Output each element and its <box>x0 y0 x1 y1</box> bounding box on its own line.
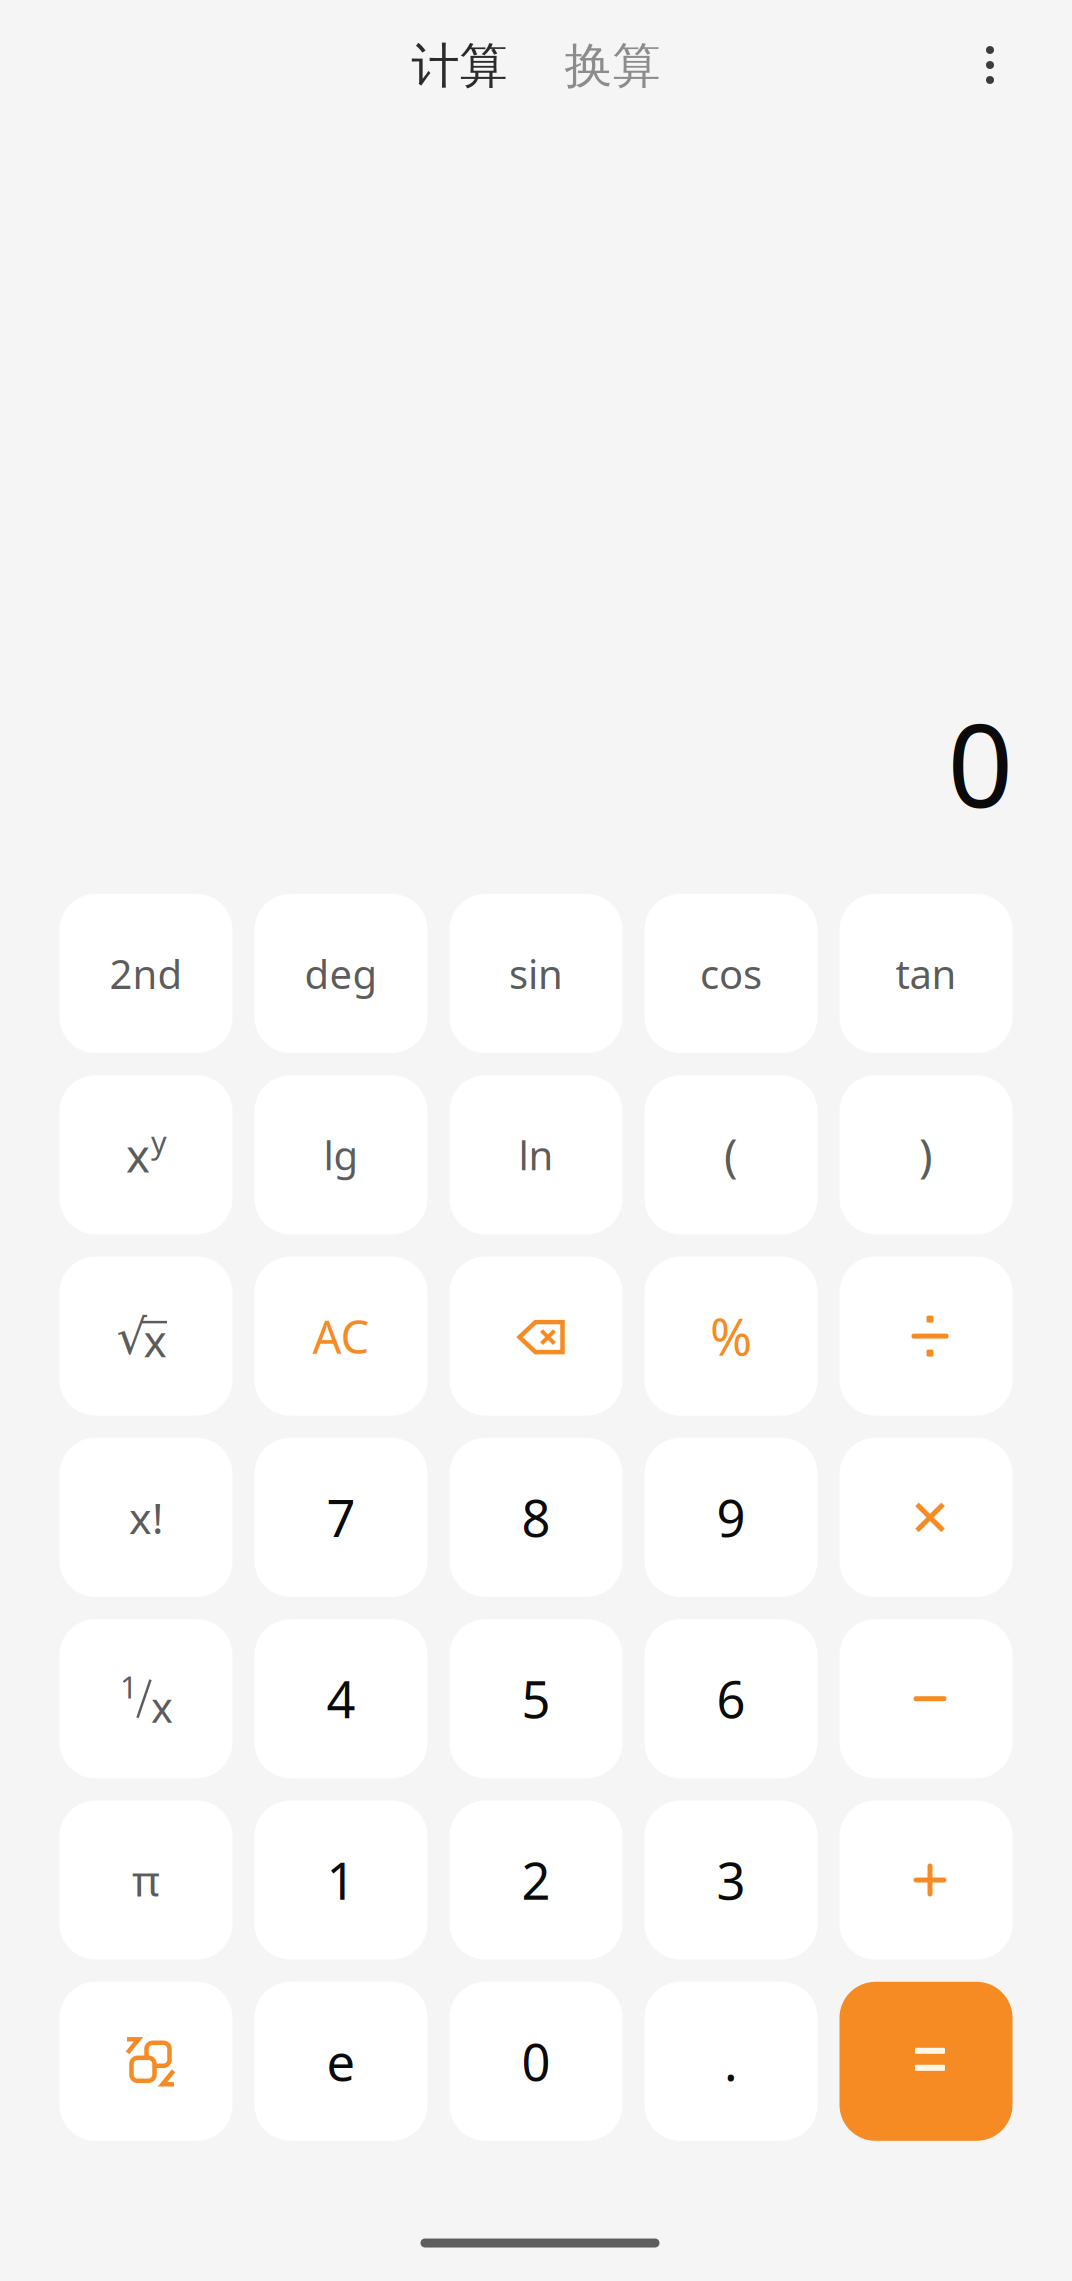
staticText: 7 <box>326 1484 355 1551</box>
button[interactable]: ) <box>839 1075 1012 1234</box>
staticText: y <box>151 1121 167 1162</box>
staticText: ln <box>518 1128 553 1181</box>
staticText: x <box>151 1679 173 1734</box>
staticText: ) <box>919 1125 933 1185</box>
button[interactable]: Delete <box>449 1257 622 1416</box>
staticText: x <box>126 1125 150 1185</box>
staticText: 1 <box>120 1666 138 1707</box>
staticText: sin <box>509 947 563 1000</box>
button[interactable]: 6 <box>644 1619 817 1778</box>
staticText: ( <box>724 1125 738 1185</box>
staticText: π <box>132 1852 160 1908</box>
button[interactable]: Minus <box>839 1619 1012 1778</box>
button[interactable]: x to the power y <box>59 1075 232 1234</box>
staticText: deg <box>304 947 377 1000</box>
button[interactable]: 9 <box>644 1438 817 1597</box>
staticText: 1 <box>326 1846 355 1914</box>
staticText: cos <box>700 947 762 1000</box>
staticText: % <box>710 1302 752 1370</box>
staticText: 计算 <box>411 36 507 95</box>
button[interactable]: lg <box>254 1075 427 1234</box>
staticText: 4 <box>326 1665 355 1732</box>
staticText: AC <box>312 1306 369 1366</box>
button[interactable]: AC <box>254 1257 427 1416</box>
button[interactable]: 4 <box>254 1619 427 1778</box>
button[interactable]: e <box>254 1982 427 2141</box>
staticText: 0 <box>947 687 1013 839</box>
staticText: 2 <box>521 1846 550 1914</box>
button[interactable]: More options <box>945 20 1035 110</box>
button[interactable]: Equals <box>839 1982 1012 2141</box>
button[interactable]: 7 <box>254 1438 427 1597</box>
button[interactable]: Plus <box>839 1800 1012 1959</box>
button[interactable]: . <box>644 1982 817 2141</box>
staticText: . <box>724 2028 738 2095</box>
button[interactable]: cos <box>644 894 817 1053</box>
staticText: 3 <box>716 1846 745 1914</box>
staticText: 8 <box>521 1484 550 1551</box>
staticText: tan <box>895 947 956 1000</box>
staticText: x <box>143 1311 166 1369</box>
staticText: 换算 <box>564 36 660 95</box>
staticText: 5 <box>521 1665 550 1732</box>
button[interactable]: x! <box>59 1438 232 1597</box>
button[interactable]: 1 <box>254 1800 427 1959</box>
button[interactable]: tan <box>839 894 1012 1053</box>
staticText: 6 <box>716 1665 745 1732</box>
staticText: lg <box>323 1128 358 1181</box>
staticText: x! <box>129 1489 163 1546</box>
button[interactable]: 5 <box>449 1619 622 1778</box>
staticText: 9 <box>716 1484 745 1551</box>
button[interactable]: one over x <box>59 1619 232 1778</box>
button[interactable]: Multiply <box>839 1438 1012 1597</box>
button[interactable]: ( <box>644 1075 817 1234</box>
button[interactable]: deg <box>254 894 427 1053</box>
button[interactable]: 8 <box>449 1438 622 1597</box>
staticText: √ <box>116 1310 147 1364</box>
button[interactable]: square root of x <box>59 1257 232 1416</box>
button[interactable]: π <box>59 1800 232 1959</box>
staticText: e <box>326 2028 355 2095</box>
button[interactable]: sin <box>449 894 622 1053</box>
staticText: 2nd <box>109 947 182 1000</box>
button[interactable]: ln <box>449 1075 622 1234</box>
staticText: 0 <box>521 2028 550 2095</box>
button[interactable]: 换算 <box>564 36 660 95</box>
button[interactable]: 2nd <box>59 894 232 1053</box>
button[interactable]: 0 <box>449 1982 622 2141</box>
button[interactable]: % <box>644 1257 817 1416</box>
button[interactable]: 计算 <box>411 36 507 95</box>
button[interactable]: Unit converter <box>59 1982 232 2141</box>
button[interactable]: Divide <box>839 1257 1012 1416</box>
button[interactable]: 3 <box>644 1800 817 1959</box>
button[interactable]: 2 <box>449 1800 622 1959</box>
